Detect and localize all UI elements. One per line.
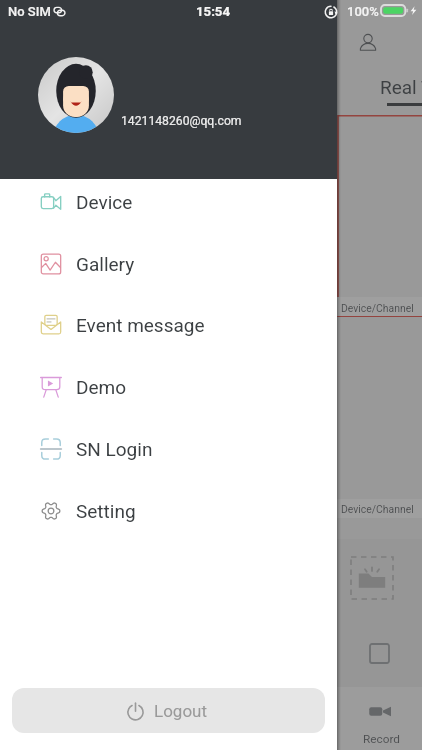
other: Capture: [370, 644, 389, 663]
other: Account: [358, 33, 378, 53]
button[interactable]: Device: [0, 171, 337, 233]
staticText: SN Login: [76, 438, 153, 460]
button[interactable]: Demo: [0, 356, 337, 418]
staticText: Gallery: [76, 253, 135, 275]
other: Record: [368, 704, 393, 719]
button[interactable]: Logout: [12, 688, 325, 733]
button[interactable]: Gallery: [0, 233, 337, 295]
staticText: Record: [363, 732, 400, 746]
staticText: Device/Channel: [341, 503, 414, 515]
staticText: Logout: [154, 701, 208, 721]
staticText: 1421148260@qq.com: [121, 114, 242, 128]
staticText: Setting: [76, 500, 136, 522]
staticText: No SIM: [8, 4, 51, 19]
staticText: Event message: [76, 314, 205, 336]
button[interactable]: Setting: [0, 480, 337, 542]
staticText: 15:54: [196, 4, 230, 19]
staticText: Real T: [380, 76, 422, 98]
staticText: Device: [76, 191, 133, 213]
staticText: Demo: [76, 376, 127, 398]
staticText: 100%: [347, 4, 379, 19]
button[interactable]: Event message: [0, 294, 337, 356]
staticText: Device/Channel: [341, 302, 414, 314]
button[interactable]: SN Login: [0, 418, 337, 480]
